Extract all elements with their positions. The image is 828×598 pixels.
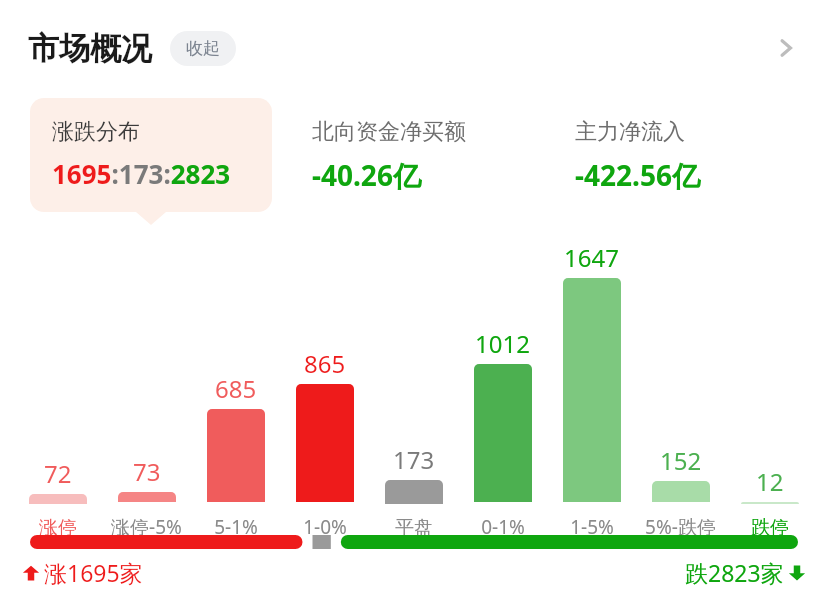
staticText: 市场概况	[28, 29, 152, 68]
staticText: -422.56亿	[575, 156, 700, 194]
staticText: 1-5%	[570, 514, 614, 540]
staticText: 跌停	[751, 516, 789, 540]
staticText: 平盘	[395, 516, 433, 540]
staticText: -40.26亿	[312, 156, 421, 194]
staticText: 0-1%	[481, 514, 525, 540]
staticText: 涨停-5%	[111, 514, 182, 540]
button[interactable]: More market overview	[762, 24, 810, 72]
button[interactable]: 主力净流入	[555, 98, 798, 212]
staticText: 涨停	[39, 516, 77, 540]
button[interactable]: 北向资金净买额	[292, 98, 535, 212]
staticText: 北向资金净买额	[312, 118, 466, 146]
staticText: 1012	[475, 327, 530, 360]
button[interactable]: 涨跌分布	[30, 98, 272, 212]
staticText: 涨跌分布	[52, 118, 140, 146]
staticText: 5-1%	[214, 514, 258, 540]
staticText: 5%-跌停	[645, 514, 716, 540]
staticText: 跌2823家	[685, 557, 784, 588]
button[interactable]: 跌2823家	[685, 557, 806, 588]
staticText: 主力净流入	[575, 118, 685, 146]
staticText: 865	[304, 347, 346, 380]
staticText: 152	[660, 444, 702, 477]
button[interactable]: 涨1695家	[22, 557, 143, 588]
staticText: 72	[44, 457, 72, 490]
staticText: 73	[133, 455, 161, 488]
staticText: 12	[756, 465, 784, 498]
button[interactable]: 收起	[170, 31, 236, 66]
staticText: 涨1695家	[44, 557, 143, 588]
staticText: 1-0%	[303, 514, 347, 540]
staticText: 685	[215, 372, 257, 405]
staticText: 173	[393, 443, 435, 476]
staticText: 1695:173:2823	[52, 156, 231, 191]
staticText: 1647	[564, 241, 619, 274]
staticText: 收起	[186, 38, 220, 59]
